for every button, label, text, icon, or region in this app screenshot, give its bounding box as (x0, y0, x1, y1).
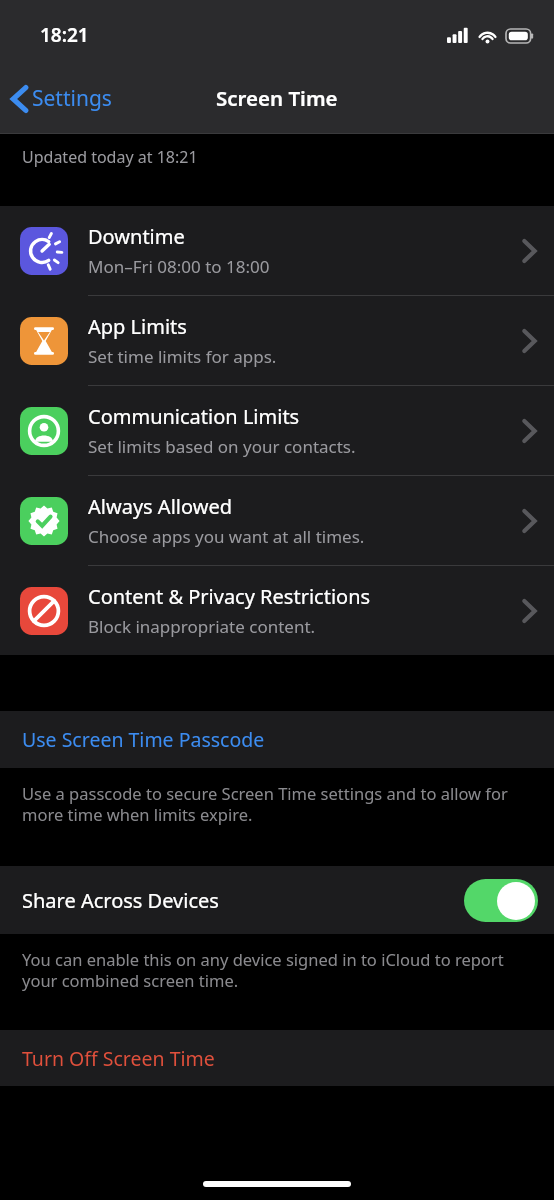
staticText: You can enable this on any device signed… (22, 948, 526, 992)
staticText: Content & Privacy Restrictions (88, 583, 371, 610)
staticText: Set limits based on your contacts. (88, 435, 356, 458)
button[interactable]: Content & Privacy Restrictions (0, 566, 554, 655)
staticText: Always Allowed (88, 493, 232, 520)
staticText: Settings (32, 84, 112, 113)
button[interactable]: Use Screen Time Passcode (0, 711, 554, 768)
staticText: App Limits (88, 313, 187, 340)
button[interactable]: Settings (0, 78, 122, 119)
staticText: Mon–Fri 08:00 to 18:00 (88, 255, 270, 278)
staticText: Communication Limits (88, 403, 300, 430)
staticText: Use a passcode to secure Screen Time set… (22, 782, 526, 826)
staticText: Share Across Devices (22, 887, 219, 914)
staticText: Updated today at 18:21 (22, 146, 198, 168)
staticText: Turn Off Screen Time (22, 1045, 215, 1072)
staticText: Choose apps you want at all times. (88, 525, 365, 548)
staticText: Downtime (88, 223, 185, 250)
button[interactable]: Turn Off Screen Time (0, 1030, 554, 1086)
button[interactable]: Downtime (0, 206, 554, 295)
staticText: 18:21 (40, 22, 89, 48)
button[interactable]: Share Across Devices (0, 866, 554, 934)
button[interactable]: Share Across Devices toggle (464, 879, 538, 922)
staticText: Block inappropriate content. (88, 615, 316, 638)
staticText: Use Screen Time Passcode (22, 726, 265, 753)
button[interactable]: App Limits (0, 296, 554, 385)
button[interactable]: Always Allowed (0, 476, 554, 565)
button[interactable]: Communication Limits (0, 386, 554, 475)
staticText: Set time limits for apps. (88, 345, 277, 368)
staticText: Screen Time (216, 84, 338, 112)
